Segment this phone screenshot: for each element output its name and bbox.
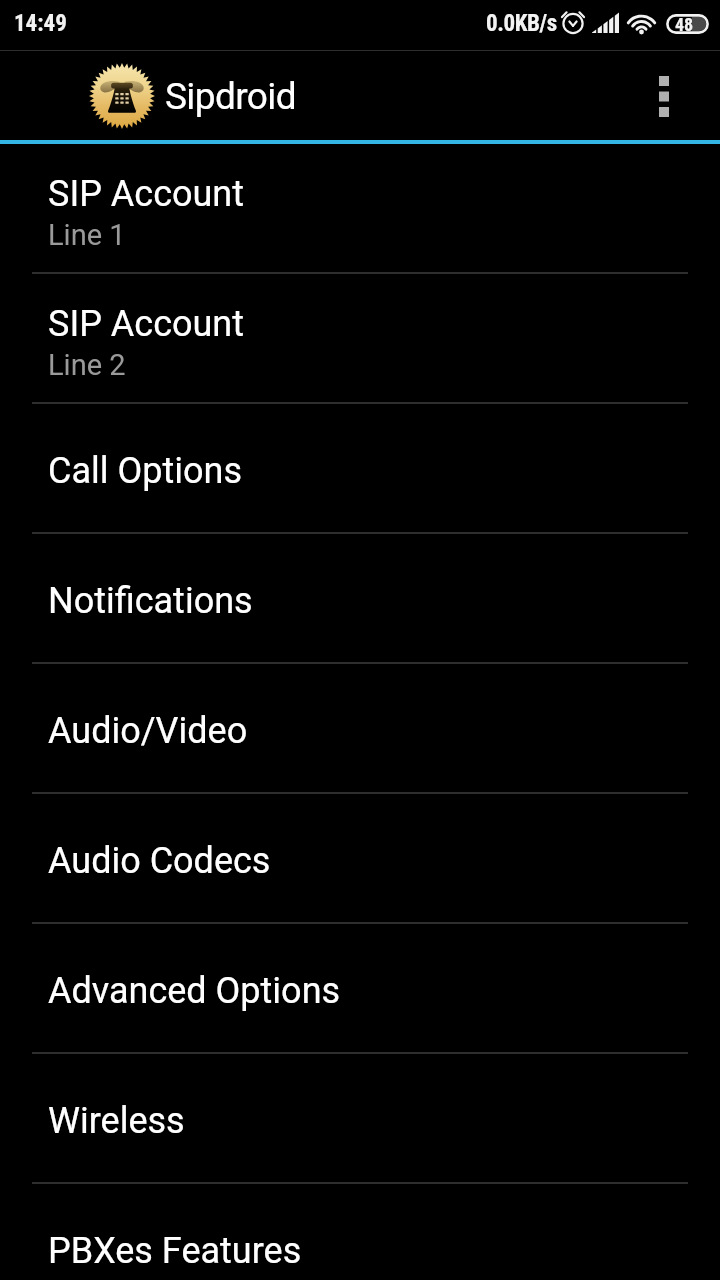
staticText: Line 2 — [48, 348, 126, 382]
button[interactable]: Audio Codecs — [0, 794, 720, 922]
staticText: 14:49 — [14, 10, 67, 37]
staticText: Audio/Video — [48, 710, 248, 752]
button[interactable]: Call Options — [0, 404, 720, 532]
staticText: Line 1 — [48, 218, 126, 252]
staticText: SIP Account — [48, 303, 245, 345]
staticText: Sipdroid — [165, 75, 296, 118]
button[interactable]: More options — [626, 50, 702, 140]
button[interactable]: SIP Account — [0, 144, 720, 272]
staticText: PBXes Features — [48, 1230, 302, 1272]
staticText: SIP Account — [48, 173, 245, 215]
staticText: 0.0KB/s — [486, 10, 557, 37]
button[interactable]: Wireless — [0, 1054, 720, 1182]
staticText: 48 — [675, 14, 694, 34]
button[interactable]: Notifications — [0, 534, 720, 662]
button[interactable]: Advanced Options — [0, 924, 720, 1052]
button[interactable]: Audio/Video — [0, 664, 720, 792]
staticText: Wireless — [48, 1100, 185, 1142]
staticText: Notifications — [48, 580, 253, 622]
staticText: Call Options — [48, 450, 242, 492]
staticText: Audio Codecs — [48, 840, 271, 882]
staticText: Advanced Options — [48, 970, 341, 1012]
button[interactable]: SIP Account — [0, 274, 720, 402]
button[interactable]: PBXes Features — [0, 1184, 720, 1280]
